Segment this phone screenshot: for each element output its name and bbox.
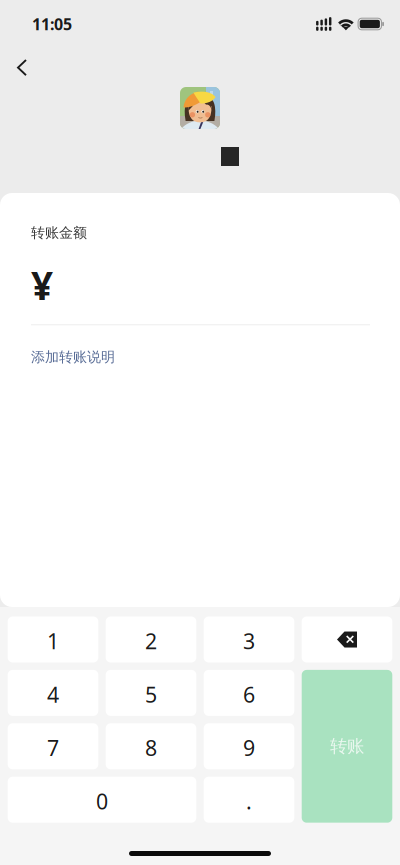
staticText: 添加转账说明	[31, 348, 115, 366]
button[interactable]: 3	[204, 616, 294, 662]
button[interactable]: 8	[106, 723, 196, 769]
staticText: 9	[243, 733, 255, 762]
button[interactable]: 5	[106, 670, 196, 716]
staticText: 4	[47, 680, 59, 709]
staticText: 5	[145, 680, 157, 709]
staticText: 8	[145, 733, 157, 762]
button[interactable]: 2	[106, 616, 196, 662]
button[interactable]: 9	[204, 723, 294, 769]
button[interactable]: 转账	[302, 670, 392, 823]
button[interactable]: 6	[204, 670, 294, 716]
staticText: 11:05	[32, 13, 72, 35]
staticText: 3	[243, 626, 255, 656]
staticText: .	[246, 787, 252, 816]
staticText: 6	[243, 680, 255, 709]
staticText: 1	[47, 626, 59, 656]
button[interactable]: 1	[8, 616, 98, 662]
staticText: 7	[47, 733, 59, 762]
button[interactable]: .	[204, 777, 294, 823]
staticText: 2	[145, 626, 157, 656]
button[interactable]: 4	[8, 670, 98, 716]
staticText: ¥	[31, 259, 53, 311]
staticText: 转账	[330, 735, 364, 757]
staticText: 0	[96, 787, 108, 816]
staticText: 转账金额	[31, 224, 87, 242]
button[interactable]: Back	[0, 44, 41, 82]
button[interactable]: 添加转账说明	[31, 325, 115, 376]
button[interactable]: 0	[8, 777, 196, 823]
button[interactable]: 7	[8, 723, 98, 769]
button[interactable]: Delete	[302, 616, 392, 662]
